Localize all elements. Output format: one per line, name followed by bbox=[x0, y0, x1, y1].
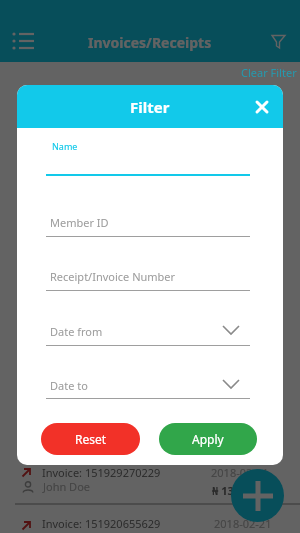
staticText: Receipt/Invoice Number bbox=[50, 269, 176, 284]
button[interactable]: Date from bbox=[46, 322, 250, 346]
staticText: Apply bbox=[192, 431, 224, 447]
button[interactable]: Clear Filter bbox=[241, 65, 297, 80]
button[interactable]: Reset bbox=[41, 423, 140, 455]
staticText: Reset bbox=[75, 431, 107, 447]
staticText: 2018-02-21 bbox=[211, 465, 269, 480]
staticText: Member ID bbox=[50, 215, 109, 230]
staticText: Date to bbox=[50, 378, 88, 393]
staticText: Date from bbox=[50, 324, 103, 339]
staticText: Invoice: 151929270229 bbox=[42, 465, 161, 480]
staticText: ₦ 13,500 bbox=[212, 483, 256, 498]
staticText: 2018-02-21 bbox=[214, 516, 272, 531]
staticText: John Doe bbox=[43, 479, 91, 494]
button[interactable] bbox=[268, 32, 290, 54]
button[interactable]: Date to bbox=[46, 376, 250, 399]
button[interactable] bbox=[231, 469, 284, 522]
staticText: Filter bbox=[130, 97, 170, 117]
button[interactable]: Apply bbox=[159, 423, 257, 455]
button[interactable] bbox=[10, 28, 36, 54]
staticText: Name bbox=[52, 140, 78, 152]
staticText: Invoices/Receipts bbox=[88, 33, 212, 52]
button[interactable] bbox=[253, 98, 271, 116]
staticText: Invoice: 151920655629 bbox=[42, 516, 161, 531]
